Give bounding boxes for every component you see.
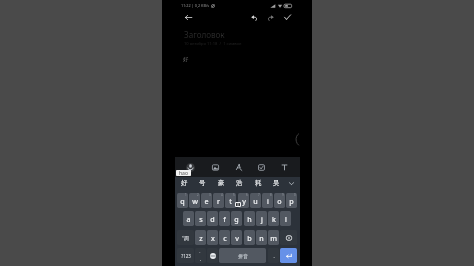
staticText: d <box>210 214 215 224</box>
button[interactable]: g <box>231 211 242 226</box>
button[interactable]: 昊 <box>267 176 285 190</box>
button[interactable]: 好 <box>175 176 193 190</box>
staticText: 号 <box>199 179 206 187</box>
button[interactable]: Redo <box>264 10 277 25</box>
button[interactable]: Text editing <box>277 160 291 174</box>
staticText: 0 <box>294 193 296 197</box>
button[interactable]: w <box>189 193 200 208</box>
button[interactable]: f <box>219 211 230 226</box>
staticText: s <box>199 214 203 224</box>
staticText: e <box>204 196 209 206</box>
staticText: 10 октября 11:18 / 1 символ <box>184 41 242 47</box>
staticText: j <box>261 214 263 224</box>
button[interactable]: l <box>280 211 291 226</box>
button[interactable]: 豪 <box>212 176 230 190</box>
button[interactable]: b <box>244 230 255 245</box>
button[interactable]: 号 <box>193 176 211 190</box>
staticText: hao <box>179 170 188 176</box>
staticText: b <box>247 233 252 243</box>
staticText: 3 <box>209 193 211 197</box>
button[interactable]: 耗 <box>249 176 267 190</box>
button[interactable]: e <box>201 193 212 208</box>
button[interactable]: Switch input method <box>207 248 218 263</box>
staticText: '调 <box>182 234 189 241</box>
button[interactable]: c <box>219 230 230 245</box>
staticText: n <box>259 233 264 243</box>
staticText: p <box>289 196 294 206</box>
button[interactable]: Stickers <box>208 160 222 174</box>
button[interactable]: j <box>256 211 267 226</box>
button[interactable]: s <box>195 211 206 226</box>
button[interactable]: . <box>268 248 279 263</box>
staticText: c <box>223 233 227 243</box>
staticText: o <box>277 196 282 206</box>
button[interactable]: Voice input <box>183 160 197 174</box>
staticText: 5 <box>233 193 235 197</box>
staticText: l <box>285 214 287 224</box>
staticText: 1 <box>185 193 187 197</box>
staticText: 耗 <box>255 179 262 187</box>
button[interactable]: Enter <box>280 248 297 263</box>
staticText: . <box>273 253 275 259</box>
button[interactable]: p <box>286 193 297 208</box>
button[interactable]: d <box>207 211 218 226</box>
button[interactable]: n <box>256 230 267 245</box>
button[interactable]: 浩 <box>230 176 248 190</box>
button[interactable]: t <box>225 193 236 208</box>
button[interactable]: m <box>268 230 279 245</box>
button[interactable]: Undo <box>248 10 261 25</box>
staticText: t <box>229 196 232 206</box>
button[interactable]: More suggestions <box>286 176 297 190</box>
staticText: 好 <box>183 56 189 63</box>
staticText: r <box>217 196 220 206</box>
staticText: x <box>211 233 215 243</box>
staticText: , <box>200 256 202 262</box>
staticText: 好 <box>181 179 188 187</box>
staticText: y <box>242 196 246 206</box>
staticText: k <box>272 214 276 224</box>
staticText: q <box>180 196 185 206</box>
button[interactable]: o <box>274 193 285 208</box>
button[interactable]: v <box>231 230 242 245</box>
button[interactable]: a <box>183 211 194 226</box>
staticText: 。 <box>199 250 203 255</box>
button[interactable]: i <box>262 193 273 208</box>
button[interactable]: ?123 <box>177 248 194 263</box>
button[interactable]: Handwriting <box>231 160 245 174</box>
staticText: m <box>270 233 277 243</box>
button[interactable]: Shift <box>177 230 194 245</box>
staticText: 昊 <box>273 179 280 187</box>
staticText: v <box>235 233 239 243</box>
staticText: h <box>247 214 252 224</box>
staticText: 2 <box>197 193 199 197</box>
staticText: 豪 <box>218 179 225 187</box>
staticText: 9 <box>282 193 284 197</box>
button[interactable]: 拼音 <box>219 248 266 263</box>
staticText: u <box>253 196 258 206</box>
staticText: 4 <box>221 193 223 197</box>
staticText: f <box>223 214 226 224</box>
button[interactable]: z <box>195 230 206 245</box>
staticText: w <box>192 196 198 206</box>
button[interactable]: Back <box>182 10 195 25</box>
staticText: i <box>267 196 269 206</box>
button[interactable]: y <box>238 193 249 208</box>
button[interactable]: h <box>244 211 255 226</box>
staticText: g <box>234 214 239 224</box>
button[interactable]: x <box>207 230 218 245</box>
button[interactable]: u <box>250 193 261 208</box>
button[interactable]: Backspace <box>280 230 297 245</box>
staticText: ?123 <box>181 253 191 259</box>
button[interactable]: r <box>213 193 224 208</box>
staticText: a <box>186 214 191 224</box>
staticText: 8 <box>270 193 272 197</box>
staticText: 7 <box>258 193 260 197</box>
staticText: 拼音 <box>238 253 248 259</box>
button[interactable]: Punctuation <box>195 248 206 263</box>
staticText: z <box>199 233 203 243</box>
staticText: 浩 <box>236 179 243 187</box>
button[interactable]: k <box>268 211 279 226</box>
button[interactable]: Clipboard <box>254 160 268 174</box>
button[interactable]: Done <box>281 10 294 25</box>
button[interactable]: q <box>177 193 188 208</box>
